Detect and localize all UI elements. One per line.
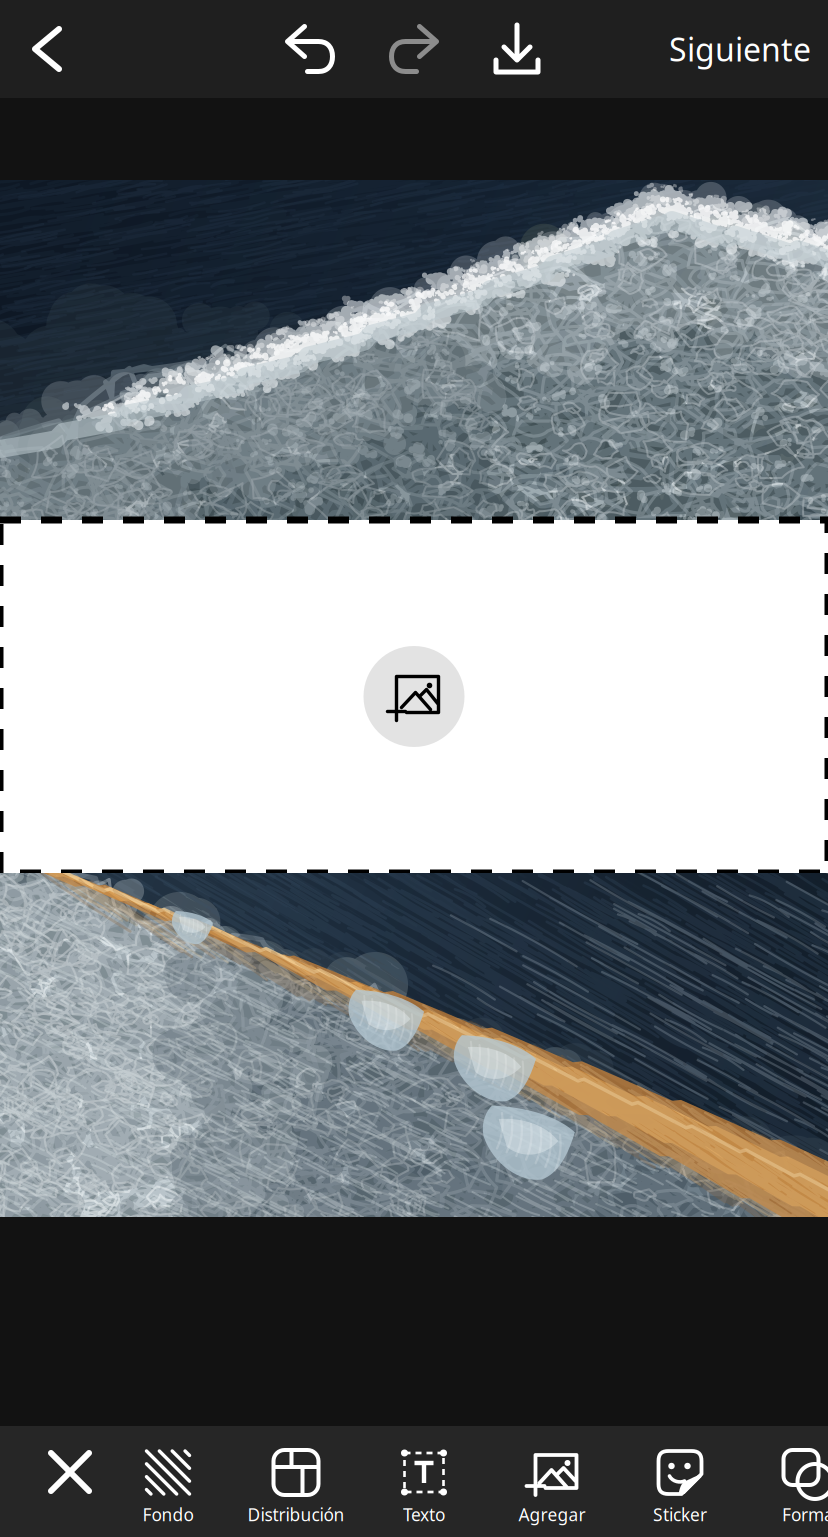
staticText: Texto	[403, 1503, 445, 1526]
button[interactable]: Distribución	[232, 1426, 360, 1537]
button[interactable]: Siguiente	[652, 0, 828, 98]
button[interactable]: Rehacer	[369, 0, 459, 98]
button[interactable]: Deshacer	[265, 0, 355, 98]
button[interactable]: Guardar	[472, 0, 562, 98]
staticText: Sticker	[653, 1503, 707, 1526]
button[interactable]: Agregar	[488, 1426, 616, 1537]
staticText: Agregar	[518, 1503, 585, 1526]
button[interactable]: Texto	[360, 1426, 488, 1537]
button[interactable]: Atrás	[2, 0, 92, 98]
staticText: Distribución	[247, 1503, 344, 1526]
button[interactable]: Forma	[744, 1426, 828, 1537]
staticText: Forma	[782, 1503, 828, 1526]
button[interactable]: Sticker	[616, 1426, 744, 1537]
button[interactable]: Fondo	[104, 1426, 232, 1537]
staticText: Fondo	[142, 1503, 193, 1526]
button[interactable]: Cerrar	[9, 1426, 131, 1537]
staticText: Siguiente	[669, 28, 811, 70]
